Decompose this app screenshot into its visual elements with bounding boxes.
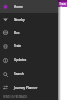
other: Journey Planner (3, 85, 8, 90)
staticText: Home (14, 5, 23, 9)
other: Train (3, 44, 8, 49)
button[interactable]: Train (0, 39, 58, 53)
button[interactable]: Nearby (0, 13, 58, 26)
other: Bus (3, 30, 8, 35)
other: Nearby (3, 17, 8, 22)
staticText: Nearby (14, 18, 25, 22)
staticText: SEND US FEEDBACK (3, 95, 28, 99)
staticText: Transit (59, 2, 67, 7)
button[interactable]: Bus (0, 26, 58, 39)
staticText: Journey Planner (14, 86, 38, 90)
staticText: Updates (14, 58, 27, 62)
button[interactable]: SEND US FEEDBACK (0, 94, 58, 100)
other: Search (3, 72, 8, 77)
staticText: Bus (14, 31, 20, 35)
button[interactable]: Home (0, 0, 58, 13)
button[interactable]: Updates (0, 53, 58, 67)
button[interactable]: Search (0, 67, 58, 81)
staticText: Train (14, 44, 22, 48)
other: Updates (3, 58, 8, 63)
staticText: Search (14, 72, 24, 76)
button[interactable]: Journey Planner (0, 81, 58, 94)
other: Home (3, 4, 8, 9)
